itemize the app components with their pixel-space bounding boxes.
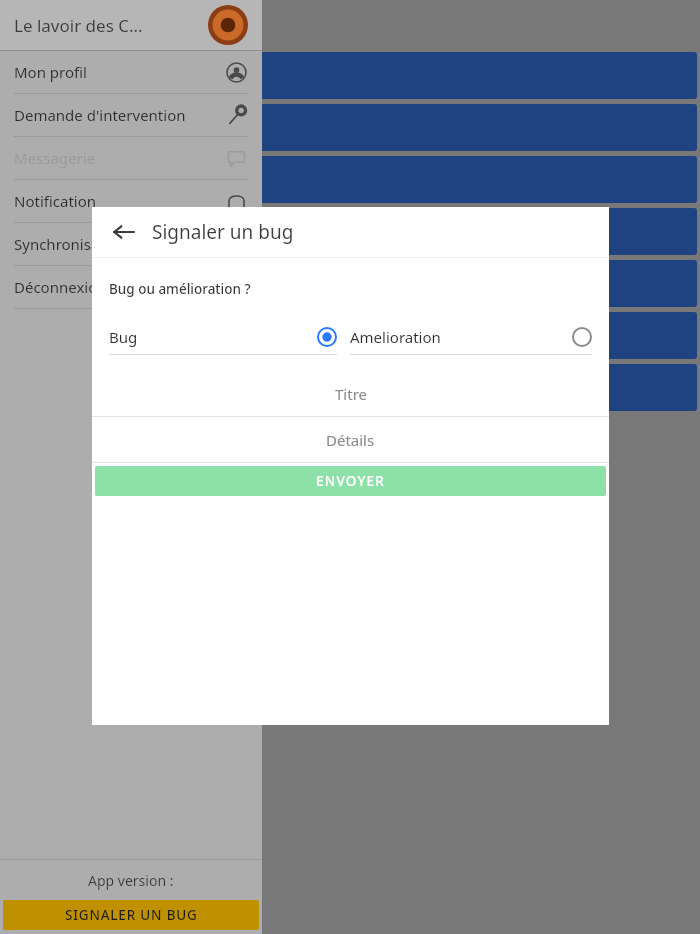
button[interactable]: Détails [92, 417, 609, 462]
staticText: Notification [14, 191, 224, 211]
button[interactable] [3, 364, 697, 411]
staticText: Amelioration [350, 327, 572, 347]
staticText: Bug [109, 327, 317, 347]
staticText: Le lavoir des C... [14, 14, 208, 37]
staticText: ENVOYER [316, 472, 385, 490]
staticText: Signaler un bug [152, 219, 294, 245]
staticText: Mon profil [14, 62, 224, 82]
button[interactable] [3, 260, 697, 307]
button[interactable]: Notification [0, 180, 262, 222]
staticText: Déconnexion [14, 277, 224, 297]
button[interactable] [3, 312, 697, 359]
button[interactable]: Bug [109, 320, 337, 354]
button[interactable]: Back [106, 214, 142, 250]
button[interactable]: SIGNALER UN BUG [3, 900, 259, 930]
button[interactable] [3, 208, 697, 255]
staticText: Bug ou amélioration ? [109, 280, 251, 298]
staticText: Messagerie [14, 148, 224, 168]
button[interactable]: Mon profil [0, 51, 262, 93]
button[interactable]: Amelioration [350, 320, 592, 354]
button[interactable]: Titre [92, 371, 609, 416]
staticText: Demande d'intervention [14, 105, 224, 125]
staticText: DÉMARRER JOURNÉE [17, 118, 177, 138]
button[interactable]: VISUALISATION DE TOURNÉES [3, 52, 697, 99]
button[interactable]: Synchronisation [0, 223, 262, 265]
button[interactable]: ENVOYER [95, 466, 606, 496]
staticText: Synchronisation [14, 234, 224, 254]
staticText: SIGNALER UN BUG [65, 906, 198, 924]
staticText: App version : [88, 871, 174, 890]
button[interactable]: Demande d'intervention [0, 94, 262, 136]
staticText: VISUALISATION DE TOURNÉES [17, 66, 250, 86]
staticText: Titre [335, 384, 367, 404]
staticText: JOURNÉE(S) DU JOUR [17, 170, 179, 190]
button[interactable]: Déconnexion [0, 266, 262, 308]
button[interactable]: DÉMARRER JOURNÉE [3, 104, 697, 151]
staticText: Détails [326, 430, 375, 450]
button[interactable]: JOURNÉE(S) DU JOUR [3, 156, 697, 203]
